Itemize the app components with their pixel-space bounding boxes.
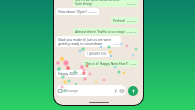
- staticText: 11:02 PM: [126, 31, 136, 34]
- staticText: 12:00: [130, 63, 136, 66]
- staticText: Glad you made it! Just as we were gettin…: [58, 37, 112, 46]
- staticText: Perfect!: [113, 18, 126, 23]
- staticText: 12:00: [79, 73, 85, 76]
- button[interactable]: How about 10pm?: [56, 8, 99, 15]
- button[interactable]: Happy 2025!: [56, 70, 87, 77]
- button[interactable]: Glad you made it! Just as we were gettin…: [56, 36, 121, 47]
- staticText: Ok, I'll be there around nine. Sure thin…: [75, 0, 126, 6]
- staticText: 9:45 PM: [127, 20, 136, 23]
- staticText: Message: [64, 88, 79, 93]
- staticText: This is it! Happy New Year!!!: [85, 61, 129, 66]
- staticText: 1 JANUARY 2025: [87, 52, 107, 56]
- staticText: 11:55: [113, 43, 119, 46]
- staticText: Almost there! Traffic is so crazy!: [75, 29, 125, 34]
- button[interactable]: Almost there! Traffic is so crazy!: [73, 28, 138, 35]
- button[interactable]: Ok, I'll be there around nine. Sure thin…: [73, 0, 138, 7]
- button[interactable]: Perfect!: [111, 17, 138, 24]
- button[interactable]: Voice message: [128, 86, 138, 96]
- staticText: Happy 2025!: [58, 71, 78, 76]
- staticText: 9:42 PM: [88, 11, 97, 14]
- staticText: How about 10pm?: [58, 9, 87, 14]
- button[interactable]: This is it! Happy New Year!!!: [83, 60, 138, 67]
- button[interactable]: Message: [56, 85, 126, 96]
- staticText: 9:41 PM: [127, 3, 136, 6]
